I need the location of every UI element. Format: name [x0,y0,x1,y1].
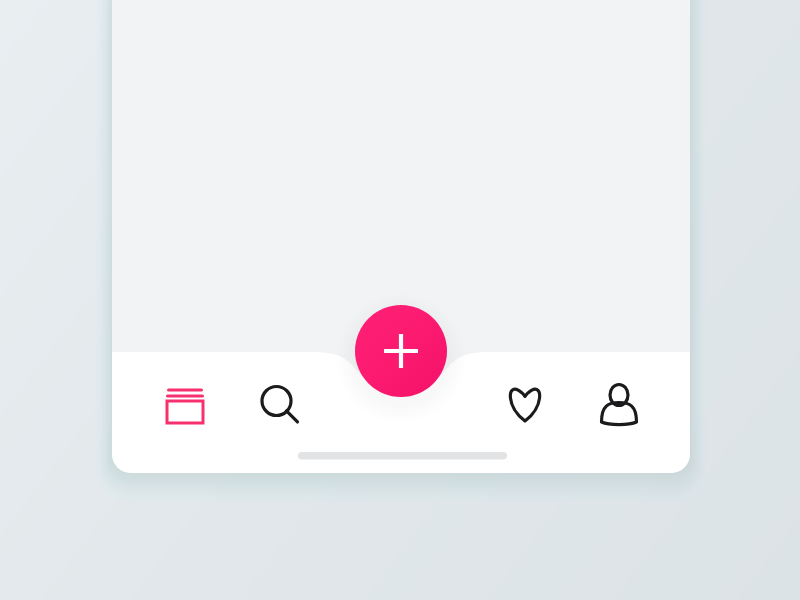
button[interactable]: Search [246,372,316,438]
button[interactable]: Favorites [491,372,561,438]
button[interactable]: Profile [585,372,655,438]
button[interactable]: Create new post [355,305,447,397]
button[interactable]: Feed [150,372,220,438]
